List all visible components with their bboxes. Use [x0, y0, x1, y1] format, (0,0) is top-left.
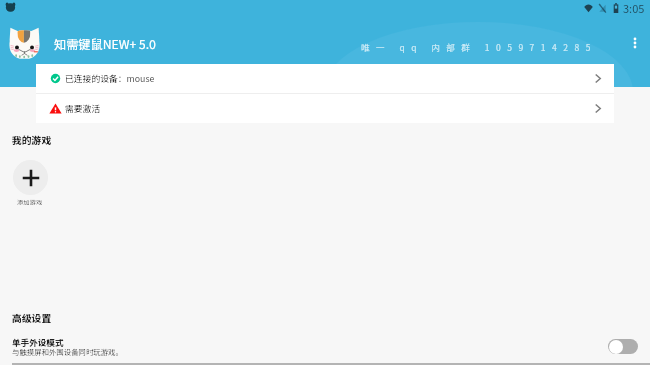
staticText: 我的游戏: [12, 133, 52, 147]
staticText: 与触摸屏和外围设备同时玩游戏。: [12, 346, 123, 357]
button[interactable]: 添加游戏: [12, 160, 48, 207]
staticText: 3:05: [623, 0, 645, 16]
staticText: 已连接的设备：mouse: [65, 72, 155, 85]
staticText: 需要激活: [65, 102, 101, 115]
staticText: 添加游戏: [17, 198, 43, 207]
staticText: 知需键鼠NEW+ 5.0: [54, 35, 156, 53]
button[interactable]: More options: [622, 30, 648, 56]
staticText: 唯一 qq 内部群 1059714285: [361, 41, 597, 53]
button[interactable]: 已连接的设备：mouse: [36, 64, 614, 93]
staticText: 单手外设模式: [12, 336, 64, 348]
button[interactable]: Toggle one-handed mode: [608, 339, 638, 354]
button[interactable]: 单手外设模式: [0, 332, 650, 362]
button[interactable]: 需要激活: [36, 94, 614, 123]
staticText: 高级设置: [12, 311, 52, 325]
